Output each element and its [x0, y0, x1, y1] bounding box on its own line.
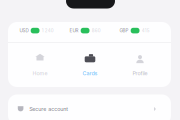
button[interactable]: Cards — [65, 53, 115, 76]
button[interactable]: Secure account — [8, 94, 171, 120]
staticText: GBP — [119, 28, 128, 33]
staticText: 1 240 — [42, 28, 54, 33]
button[interactable]: Profile — [115, 53, 165, 76]
staticText: USD — [19, 28, 28, 33]
button[interactable]: Home — [15, 53, 65, 76]
staticText: 415 — [142, 28, 150, 33]
staticText: 860 — [92, 28, 101, 33]
staticText: Home — [32, 70, 47, 77]
staticText: EUR — [69, 28, 78, 33]
staticText: Secure account — [29, 106, 68, 112]
staticText: Profile — [132, 70, 147, 77]
staticText: Cards — [82, 70, 97, 77]
